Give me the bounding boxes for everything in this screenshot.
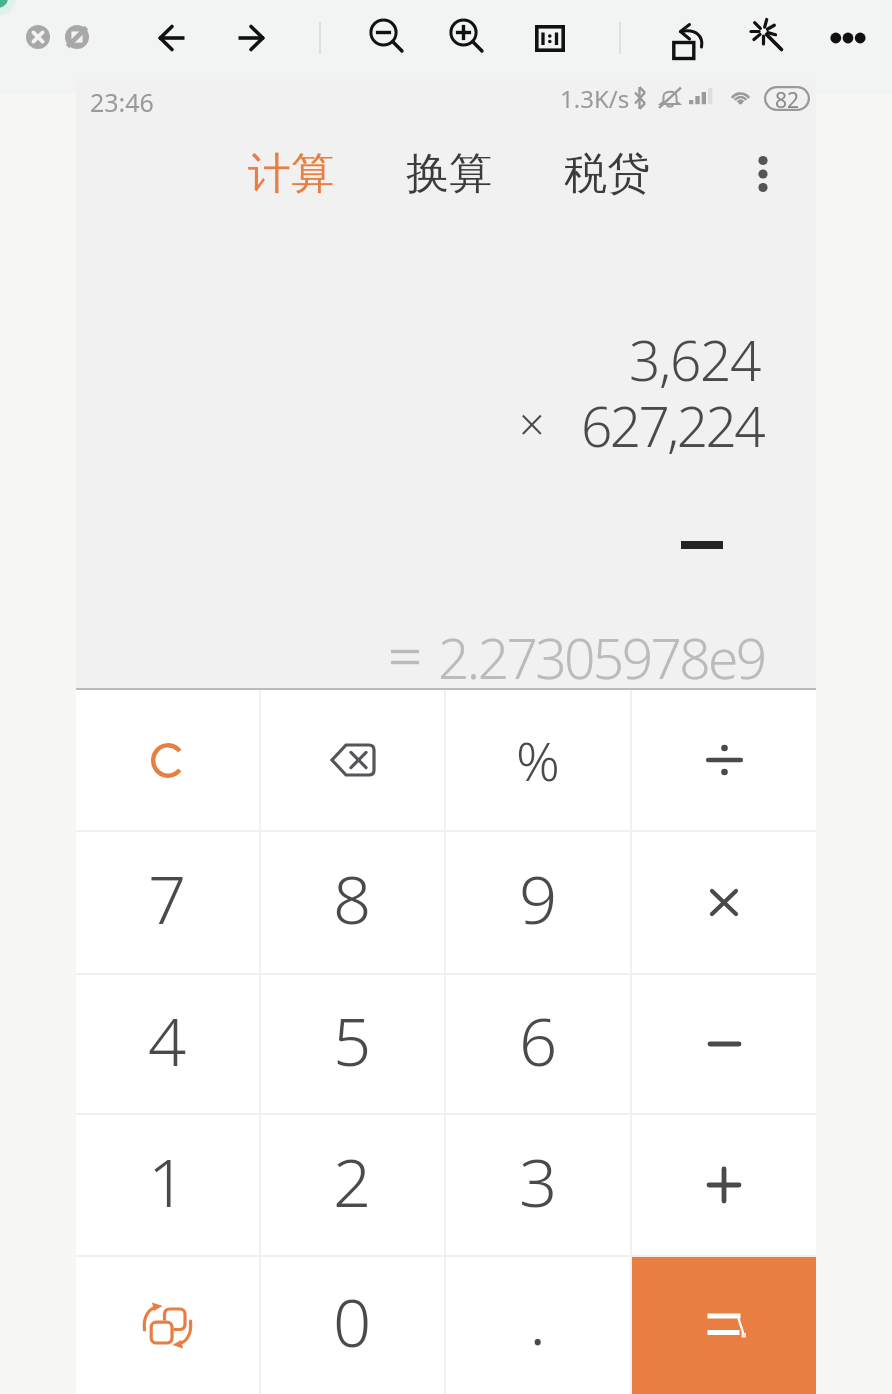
staticText: . bbox=[531, 1292, 545, 1360]
button[interactable] bbox=[76, 1257, 259, 1394]
button[interactable] bbox=[632, 1115, 816, 1255]
button[interactable] bbox=[632, 690, 816, 830]
button[interactable] bbox=[261, 690, 444, 830]
staticText: 3,624 bbox=[629, 322, 760, 397]
staticText: 7 bbox=[148, 852, 187, 943]
button[interactable]: Close bbox=[18, 17, 58, 57]
button[interactable]: 计算 bbox=[236, 135, 346, 213]
staticText: 0 bbox=[333, 1275, 372, 1366]
staticText: 82 bbox=[775, 86, 800, 111]
button[interactable]: 0 bbox=[261, 1257, 444, 1394]
button[interactable]: Effects bbox=[745, 14, 793, 62]
button[interactable]: 8 bbox=[261, 832, 444, 973]
button[interactable]: 税贷 bbox=[552, 135, 662, 213]
button[interactable]: 9 bbox=[446, 832, 630, 973]
button[interactable]: % bbox=[446, 690, 630, 830]
staticText: 2.27305978e9 bbox=[438, 620, 765, 695]
button[interactable]: 7 bbox=[76, 832, 259, 973]
button[interactable]: 换算 bbox=[394, 135, 504, 213]
button[interactable]: 5 bbox=[261, 975, 444, 1113]
staticText: × bbox=[519, 393, 545, 454]
staticText: 5 bbox=[333, 994, 372, 1085]
button[interactable] bbox=[632, 832, 816, 973]
button[interactable]: Zoom in bbox=[443, 13, 491, 61]
staticText: 1 bbox=[148, 1135, 187, 1226]
button[interactable]: More options bbox=[735, 146, 791, 202]
staticText: 6 bbox=[519, 994, 558, 1085]
staticText: 23:46 bbox=[90, 85, 154, 119]
staticText: 2 bbox=[333, 1135, 372, 1226]
button[interactable]: 6 bbox=[446, 975, 630, 1113]
staticText: 4 bbox=[148, 994, 187, 1085]
button[interactable]: Actual size bbox=[526, 14, 574, 62]
button[interactable]: 2 bbox=[261, 1115, 444, 1255]
button[interactable]: More bbox=[824, 14, 872, 62]
staticText: 计算 bbox=[248, 147, 334, 201]
button[interactable] bbox=[632, 975, 816, 1113]
button[interactable]: Forward bbox=[227, 14, 275, 62]
button[interactable]: Equals bbox=[632, 1257, 816, 1394]
button[interactable]: Block bbox=[57, 17, 97, 57]
staticText: 1.3K/s bbox=[560, 82, 630, 114]
staticText: % bbox=[516, 723, 560, 797]
staticText: 税贷 bbox=[564, 147, 650, 201]
button[interactable]: 4 bbox=[76, 975, 259, 1113]
staticText: 换算 bbox=[406, 147, 492, 201]
staticText: 9 bbox=[519, 852, 558, 943]
button[interactable]: . bbox=[446, 1257, 630, 1394]
staticText: 627,224 bbox=[581, 388, 763, 463]
button[interactable] bbox=[76, 690, 259, 830]
button[interactable]: Back bbox=[148, 14, 196, 62]
button[interactable]: 1 bbox=[76, 1115, 259, 1255]
button[interactable]: Zoom out bbox=[363, 13, 411, 61]
staticText: 8 bbox=[333, 852, 372, 943]
staticText: 3 bbox=[519, 1135, 558, 1226]
button[interactable]: Rotate bbox=[665, 13, 713, 61]
button[interactable]: 3 bbox=[446, 1115, 630, 1255]
